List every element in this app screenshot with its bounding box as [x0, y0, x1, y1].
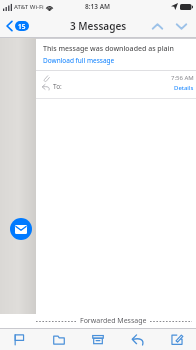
button[interactable]: Back to 15 messages	[4, 17, 31, 35]
staticText: Download full message	[43, 56, 115, 65]
staticText: Forwarded Message	[80, 316, 147, 326]
button[interactable]: Reply	[125, 329, 151, 349]
staticText: To:	[53, 82, 62, 91]
button[interactable]: Flag	[6, 329, 32, 349]
button[interactable]: Compose	[164, 329, 190, 349]
button[interactable]: Next message	[172, 17, 190, 35]
button[interactable]: Move to folder	[46, 329, 72, 349]
button[interactable]: Download full message	[43, 56, 115, 65]
button[interactable]: Unread message	[10, 218, 32, 240]
button[interactable]: Previous message	[148, 17, 166, 35]
staticText: 8:13 AM	[85, 2, 111, 11]
staticText: AT&T Wi-Fi	[14, 3, 44, 11]
staticText: This message was downloaded as plain tex…	[43, 44, 189, 54]
staticText: 15	[18, 22, 26, 31]
staticText: Details	[174, 84, 194, 92]
staticText: 7:56 AM	[171, 74, 194, 82]
staticText: 3 Messages	[70, 19, 127, 33]
button[interactable]: Details	[174, 84, 194, 92]
button[interactable]: Archive	[85, 329, 111, 349]
